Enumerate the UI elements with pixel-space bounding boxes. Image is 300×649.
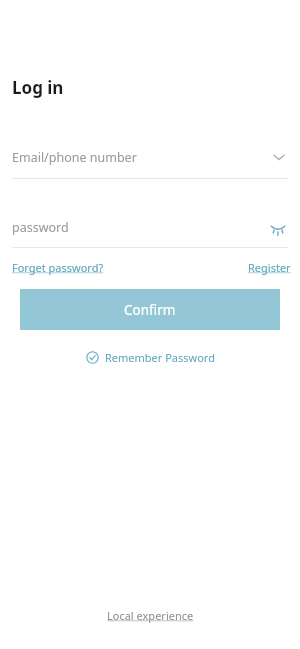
button[interactable]: Register: [248, 260, 291, 275]
button[interactable]: Forget password?: [12, 260, 104, 275]
staticText: Log in: [12, 76, 64, 99]
staticText: Email/phone number: [12, 149, 137, 166]
staticText: Local experience: [107, 608, 194, 623]
button[interactable]: Show account options: [270, 148, 288, 166]
button[interactable]: Local experience: [101, 605, 200, 626]
staticText: Forget password?: [12, 260, 104, 275]
staticText: Confirm: [124, 301, 176, 319]
staticText: Register: [248, 260, 291, 275]
staticText: password: [12, 219, 69, 236]
button[interactable]: password: [0, 214, 300, 240]
button[interactable]: Email/phone number: [0, 144, 300, 170]
button[interactable]: Confirm: [20, 289, 280, 330]
staticText: Remember Password: [105, 350, 215, 365]
button[interactable]: Toggle password visibility: [268, 217, 288, 237]
button[interactable]: Remember Password: [82, 348, 219, 367]
